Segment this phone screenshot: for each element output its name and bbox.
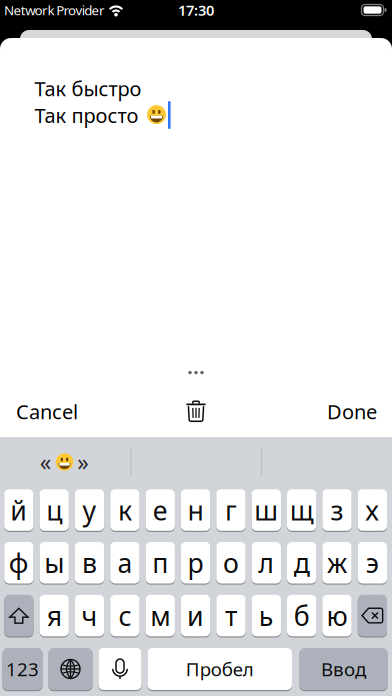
button[interactable]: я <box>40 594 69 637</box>
staticText: ш <box>254 492 278 528</box>
staticText: б <box>294 598 310 633</box>
staticText: ж <box>327 545 347 580</box>
button[interactable]: ф <box>4 541 33 584</box>
button[interactable]: Dictate <box>98 647 141 691</box>
staticText: м <box>150 598 170 633</box>
staticText: д <box>294 545 310 580</box>
button[interactable]: а <box>110 541 140 584</box>
button[interactable]: ь <box>252 594 281 637</box>
button[interactable]: Ввод <box>299 647 387 691</box>
staticText: к <box>118 492 132 528</box>
staticText: в <box>82 545 97 580</box>
button[interactable]: э <box>358 541 387 584</box>
staticText: и <box>187 598 204 633</box>
button[interactable]: ч <box>75 594 104 637</box>
button[interactable]: о <box>216 541 246 584</box>
staticText: Done <box>327 398 377 425</box>
staticText: « <box>40 447 52 477</box>
staticText: г <box>225 492 237 528</box>
staticText: ф <box>9 545 29 580</box>
button[interactable]: ж <box>322 541 352 584</box>
staticText: е <box>153 492 168 528</box>
staticText: т <box>225 598 237 633</box>
button[interactable]: н <box>181 488 210 532</box>
button[interactable]: з <box>322 488 352 532</box>
staticText: з <box>330 492 343 528</box>
button[interactable]: с <box>110 594 140 637</box>
staticText: п <box>152 545 168 580</box>
button[interactable]: л <box>252 541 281 584</box>
button[interactable]: Cancel <box>16 389 104 433</box>
staticText: ч <box>82 598 98 633</box>
staticText: Так быстро <box>34 75 141 102</box>
staticText: а <box>117 545 132 580</box>
staticText: Так просто <box>34 102 138 129</box>
staticText: Network Provider <box>4 1 105 19</box>
button[interactable]: м <box>146 594 175 637</box>
staticText: я <box>47 598 62 633</box>
staticText: о <box>223 545 239 580</box>
staticText: Cancel <box>16 398 78 425</box>
staticText: р <box>188 545 204 580</box>
staticText: х <box>365 492 379 528</box>
button[interactable]: 123 <box>2 647 42 691</box>
staticText: » <box>77 447 89 477</box>
staticText: ю <box>326 598 347 633</box>
button[interactable]: д <box>287 541 316 584</box>
staticText: Ввод <box>321 657 366 681</box>
staticText: ь <box>259 598 274 633</box>
button[interactable]: Emoji suggestion <box>2 440 126 484</box>
button[interactable]: к <box>110 488 140 532</box>
button[interactable]: т <box>216 594 246 637</box>
staticText: у <box>83 492 97 528</box>
button[interactable]: Next keyboard <box>48 647 92 691</box>
staticText: Пробел <box>186 657 254 681</box>
staticText: 123 <box>6 657 39 681</box>
button[interactable]: в <box>75 541 104 584</box>
button[interactable]: у <box>75 488 104 532</box>
staticText: э <box>366 545 379 580</box>
staticText: 17:30 <box>178 0 214 20</box>
staticText: н <box>188 492 204 528</box>
staticText: с <box>118 598 131 633</box>
button[interactable]: Delete <box>166 389 226 433</box>
button[interactable]: Delete <box>358 594 387 637</box>
button[interactable]: б <box>287 594 316 637</box>
button[interactable]: щ <box>287 488 316 532</box>
button[interactable]: ы <box>40 541 69 584</box>
button[interactable]: й <box>4 488 33 532</box>
button[interactable]: и <box>181 594 210 637</box>
staticText: ц <box>46 492 62 528</box>
button[interactable]: х <box>358 488 387 532</box>
staticText: ы <box>44 545 64 580</box>
button[interactable]: р <box>181 541 210 584</box>
button[interactable]: Shift <box>4 594 33 637</box>
staticText: щ <box>290 492 314 528</box>
button[interactable]: ц <box>40 488 69 532</box>
staticText: л <box>258 545 274 580</box>
button[interactable]: Done <box>289 389 377 433</box>
button[interactable]: е <box>146 488 175 532</box>
button[interactable]: Пробел <box>147 647 292 691</box>
button[interactable]: п <box>146 541 175 584</box>
button[interactable]: ш <box>252 488 281 532</box>
button[interactable]: ю <box>322 594 352 637</box>
staticText: й <box>10 492 27 528</box>
button[interactable]: г <box>216 488 246 532</box>
